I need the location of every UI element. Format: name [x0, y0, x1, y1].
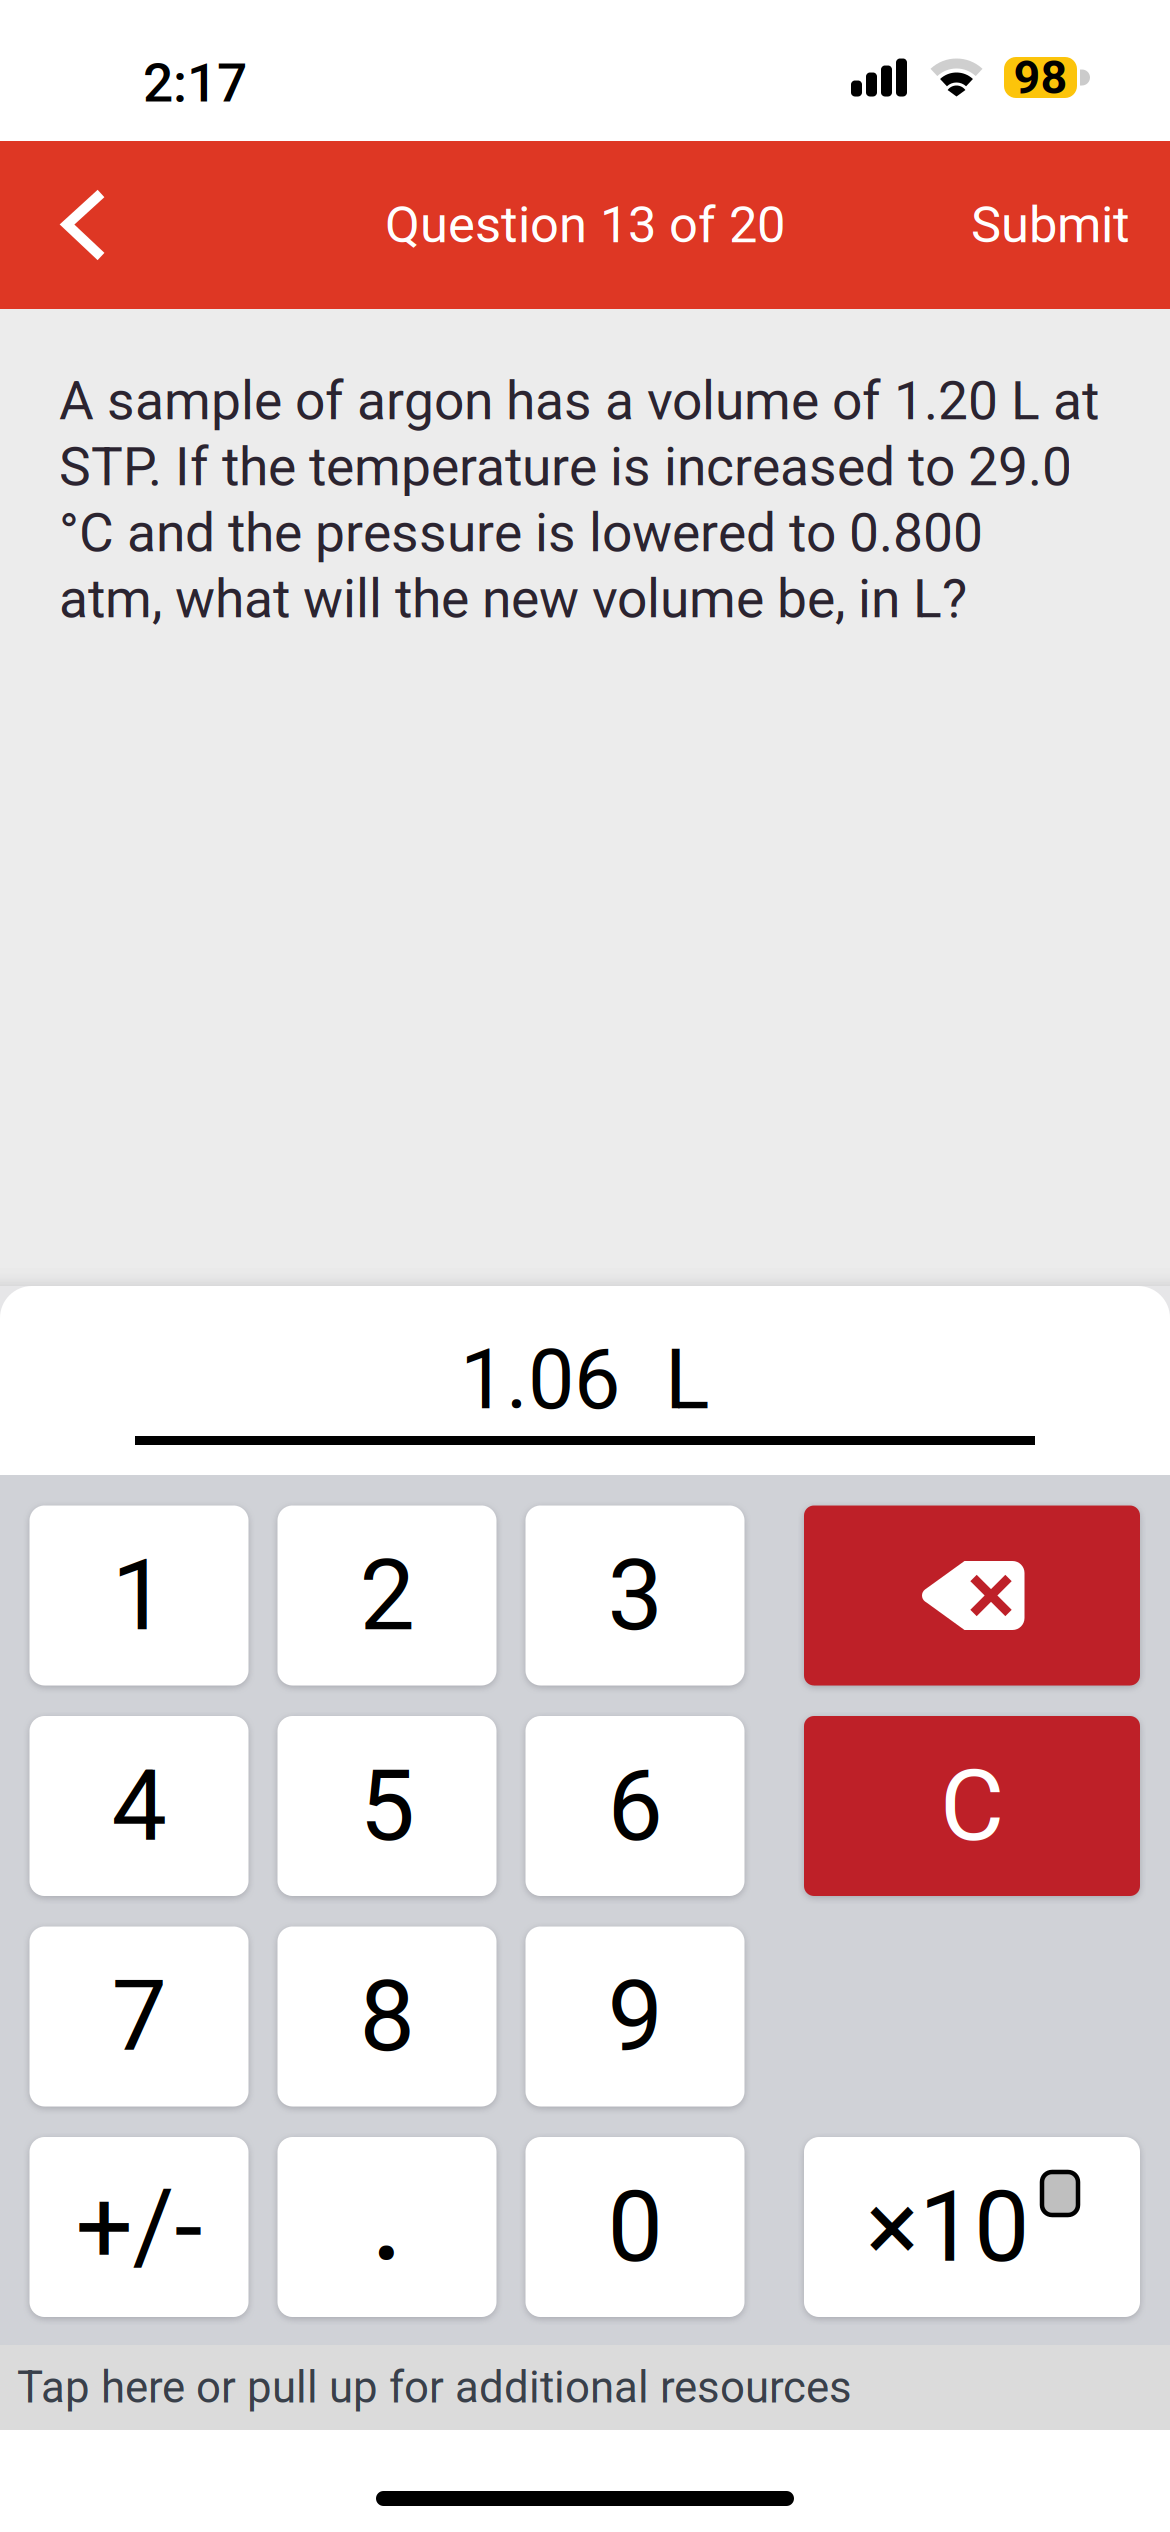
button[interactable]: Times ten to the power of	[804, 2137, 1140, 2317]
staticText: 7	[111, 1959, 166, 2074]
button[interactable]: 6	[525, 1716, 744, 1896]
button[interactable]: 7	[29, 1926, 248, 2106]
staticText: +/-	[75, 2168, 202, 2286]
staticText: 9	[607, 1959, 662, 2074]
button[interactable]: +/-	[29, 2137, 248, 2317]
staticText: L	[665, 1332, 710, 1428]
button[interactable]: C	[804, 1716, 1140, 1896]
staticText: 2	[359, 1538, 414, 1653]
staticText: 2:17	[143, 52, 247, 114]
button[interactable]: .	[277, 2137, 496, 2317]
staticText: Submit	[971, 195, 1130, 255]
staticText: 1	[111, 1538, 166, 1653]
staticText: STP. If the temperature is increased to …	[59, 436, 1072, 498]
staticText: 1.06	[460, 1332, 620, 1428]
button[interactable]: 9	[525, 1926, 744, 2106]
staticText: 3	[607, 1538, 662, 1653]
staticText: 0	[607, 2169, 662, 2285]
button[interactable]: 0	[525, 2137, 744, 2317]
button[interactable]: Tap here or pull up for additional resou…	[0, 2345, 1170, 2430]
staticText: Question 13 of 20	[385, 195, 785, 255]
staticText: A sample of argon has a volume of 1.20 L…	[59, 370, 1099, 432]
button[interactable]: 2	[277, 1505, 496, 1685]
button[interactable]: 3	[525, 1505, 744, 1685]
button[interactable]: Submit	[941, 141, 1170, 309]
staticText: ×10	[866, 2169, 1029, 2285]
staticText: atm, what will the new volume be, in L?	[59, 568, 967, 630]
staticText: 5	[359, 1748, 414, 1864]
button[interactable]: Delete	[804, 1505, 1140, 1685]
staticText: .	[369, 2135, 404, 2292]
staticText: °C and the pressure is lowered to 0.800	[59, 502, 983, 564]
button[interactable]: 1	[29, 1505, 248, 1685]
button[interactable]: Back	[0, 141, 146, 309]
button[interactable]: 8	[277, 1926, 496, 2106]
staticText: 8	[359, 1959, 414, 2074]
staticText: C	[940, 1748, 1004, 1864]
staticText: 98	[1013, 50, 1067, 105]
staticText: 4	[111, 1748, 166, 1864]
staticText: 6	[607, 1748, 662, 1864]
button[interactable]: 5	[277, 1716, 496, 1896]
staticText: Tap here or pull up for additional resou…	[17, 2362, 852, 2413]
button[interactable]: 4	[29, 1716, 248, 1896]
